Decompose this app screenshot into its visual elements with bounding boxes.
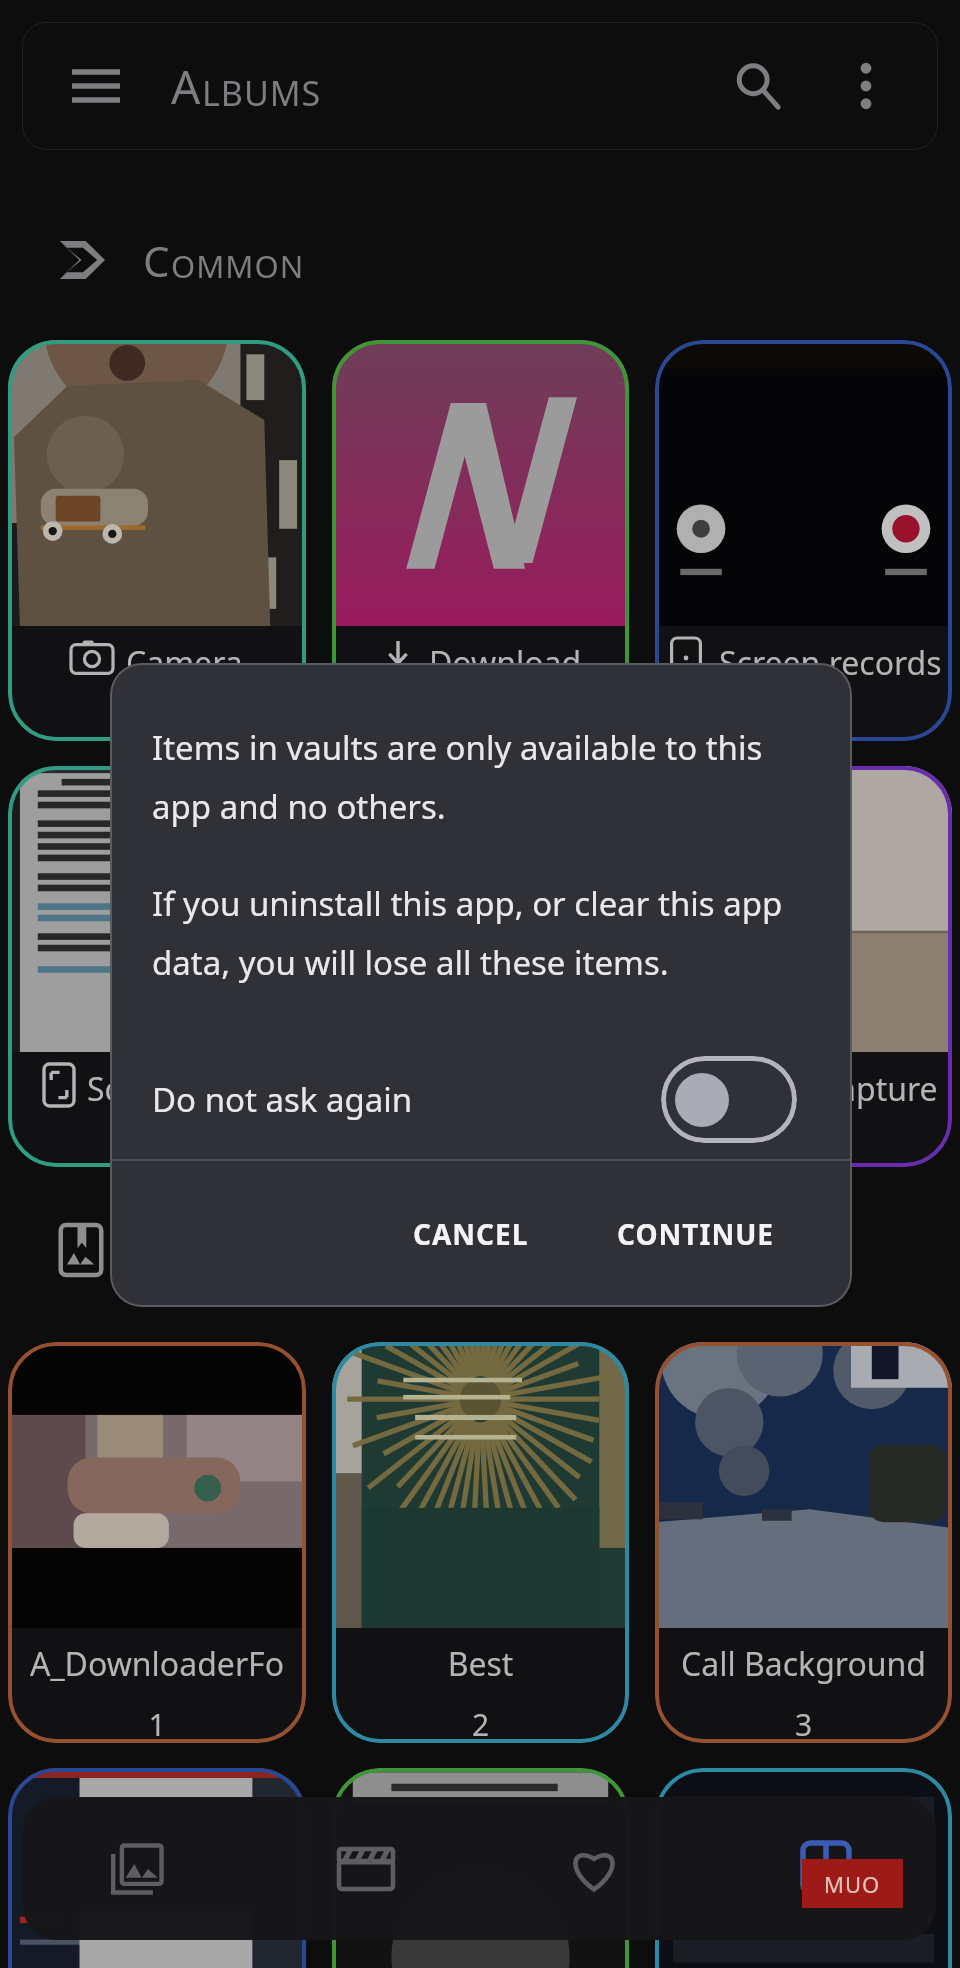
staticText: Screenshots [87, 1067, 270, 1111]
button[interactable]: Download [332, 340, 629, 741]
button[interactable]: Videos [252, 1797, 480, 1940]
button[interactable]: Navigation menu [48, 38, 144, 134]
button[interactable]: Do not ask again toggle, off [661, 1056, 797, 1143]
staticText: Items in vaults are only available to th… [152, 725, 763, 770]
staticText: Do not ask again [152, 1077, 413, 1122]
staticText: Best [332, 1642, 629, 1686]
staticText: Call Background [655, 1642, 952, 1686]
staticText: If you uninstall this app, or clear this… [152, 881, 783, 926]
staticText: CANCEL [413, 1215, 529, 1253]
button[interactable]: C [59, 218, 960, 302]
staticText: LBUMS [202, 70, 322, 116]
button[interactable]: Screen capture [655, 766, 952, 1167]
button[interactable]: More options [818, 38, 914, 134]
button[interactable]: A_DownloaderFo [8, 1342, 306, 1743]
button[interactable]: Do not ask again [152, 1039, 797, 1159]
button[interactable]: CANCEL [389, 1193, 553, 1275]
staticText: Screen records [719, 641, 942, 685]
staticText: A_DownloaderFo [8, 1642, 306, 1686]
button[interactable]: CONTINUE [593, 1193, 798, 1275]
button[interactable]: Mail [655, 1768, 952, 1968]
staticText: A [171, 55, 202, 118]
button[interactable]: Camera [8, 340, 306, 741]
staticText: Camera [126, 641, 243, 685]
staticText: OMMON [171, 245, 305, 287]
staticText: 2 [332, 1704, 629, 1743]
button[interactable]: Albums [708, 1797, 936, 1940]
button[interactable]: Call Background [655, 1342, 952, 1743]
button[interactable]: Photos [23, 1797, 252, 1940]
staticText: C [143, 232, 171, 289]
button[interactable]: Docs [332, 1768, 629, 1968]
button[interactable] [59, 1208, 960, 1292]
staticText: Screen capture [713, 1067, 938, 1111]
button[interactable]: Camera 2 [8, 1768, 306, 1968]
staticText: 1 [8, 1704, 306, 1743]
button[interactable]: Screen records [655, 340, 952, 741]
button[interactable]: Screenshots [8, 766, 306, 1167]
staticText: CONTINUE [617, 1215, 774, 1253]
staticText: 3 [655, 1704, 952, 1743]
staticText: MUO [824, 1869, 881, 1899]
staticText: Download [429, 641, 582, 685]
staticText: data, you will lose all these items. [152, 940, 669, 985]
button[interactable]: Search [710, 38, 806, 134]
button[interactable]: Pictures [332, 766, 629, 1167]
button[interactable]: Favourites [480, 1797, 708, 1940]
button[interactable]: Best [332, 1342, 629, 1743]
staticText: app and no others. [152, 784, 446, 829]
